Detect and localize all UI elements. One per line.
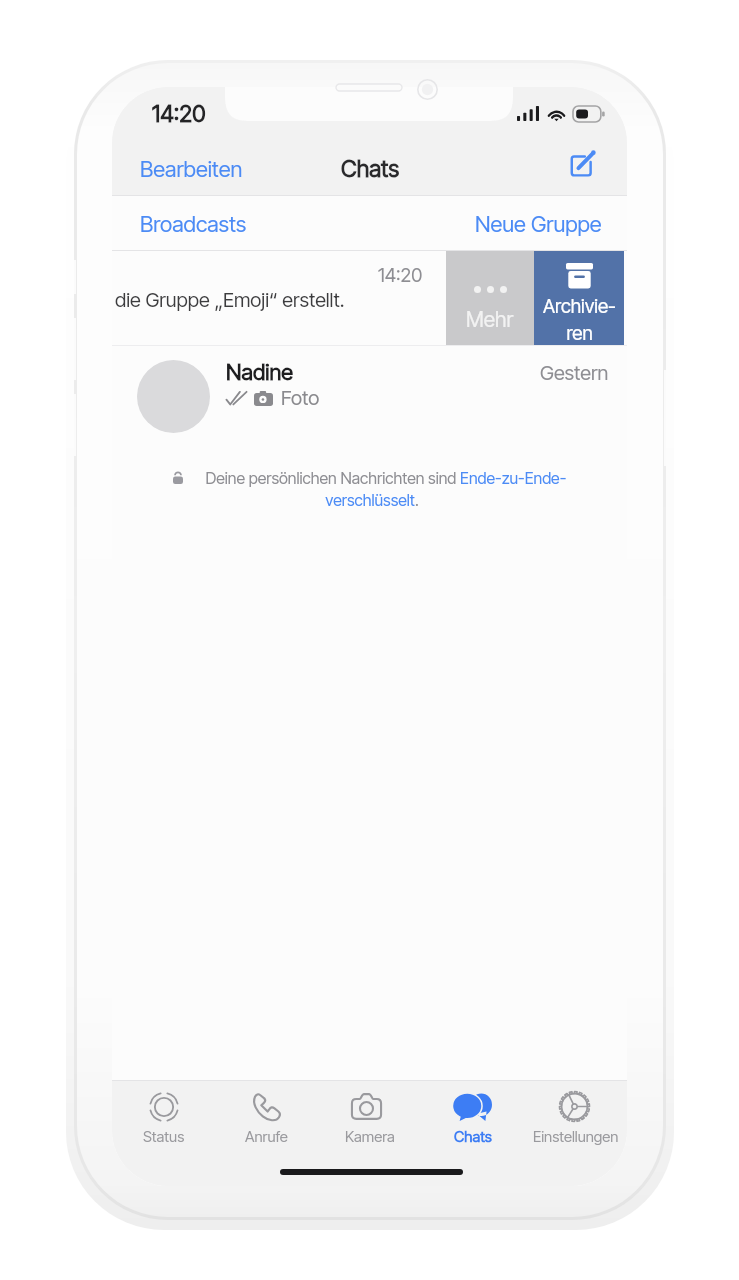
staticText: Deine persönlichen Nachrichten sind Ende… <box>162 468 582 510</box>
button[interactable]: Mehr <box>446 251 534 345</box>
button[interactable]: Archivie- ren <box>534 251 624 345</box>
button[interactable]: Kamera <box>318 1091 421 1145</box>
button[interactable]: Bearbeiten <box>126 148 257 191</box>
button[interactable]: Broadcasts <box>126 203 261 246</box>
staticText: Chats <box>454 1127 492 1145</box>
button[interactable]: Status <box>112 1091 215 1145</box>
staticText: Neue Gruppe <box>475 211 602 238</box>
staticText: Nadine <box>226 359 294 386</box>
button[interactable]: Neue Nachricht schreiben <box>564 145 600 181</box>
staticText: 14:20 <box>378 264 423 287</box>
staticText: Status <box>143 1127 185 1145</box>
button[interactable]: Chats <box>421 1091 524 1145</box>
staticText: Chats <box>341 155 400 183</box>
staticText: die Gruppe „Emoji“ erstellt. <box>115 288 345 312</box>
button[interactable]: Anrufe <box>215 1091 318 1145</box>
staticText: Kamera <box>345 1127 395 1145</box>
button[interactable]: Einstellungen <box>524 1091 627 1145</box>
button[interactable] <box>112 345 627 443</box>
staticText: Archivie- ren <box>543 295 616 344</box>
staticText: Bearbeiten <box>140 156 243 183</box>
staticText: 14:20 <box>152 100 206 128</box>
staticText: Mehr <box>466 307 514 332</box>
button[interactable]: Neue Gruppe <box>461 203 616 246</box>
staticText: Broadcasts <box>140 211 247 238</box>
staticText: Gestern <box>540 361 609 385</box>
staticText: Foto <box>281 386 320 410</box>
staticText: Anrufe <box>245 1127 288 1145</box>
staticText: Einstellungen <box>533 1127 619 1145</box>
